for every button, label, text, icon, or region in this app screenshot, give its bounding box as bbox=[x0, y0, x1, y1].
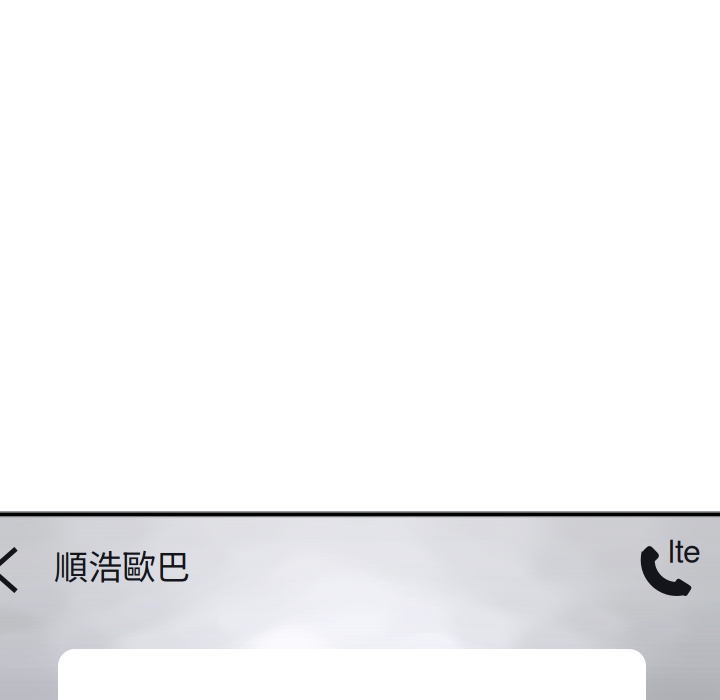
staticText: 順浩歐巴 bbox=[54, 540, 190, 589]
button[interactable]: Back bbox=[0, 527, 54, 611]
button[interactable]: Call over LTE bbox=[640, 540, 716, 606]
staticText: lte bbox=[668, 526, 701, 572]
